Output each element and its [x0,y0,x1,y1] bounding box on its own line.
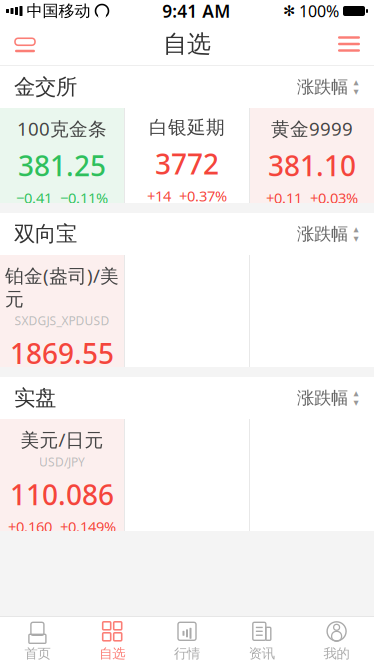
staticText: ✻ [283,3,295,19]
staticText: 涨跌幅 [297,387,348,409]
staticText: ▼ [353,235,358,243]
staticText: 100克金条 [17,116,107,141]
staticText: 实盘 [14,385,56,411]
staticText: 100% [299,0,339,22]
button[interactable]: 涨跌幅 [297,381,360,415]
staticText: ▼ [353,399,358,407]
button[interactable]: 资讯 [224,616,299,666]
staticText: 行情 [174,645,200,662]
staticText: SXDGJS_XPDUSD [14,313,109,329]
button[interactable]: 我的 [299,616,374,666]
staticText: USD/JPY [39,454,85,470]
staticText: 资讯 [249,645,275,662]
staticText: +0.11 [266,188,302,207]
staticText: ▲ [353,78,358,86]
staticText: 我的 [324,645,350,662]
staticText: 铂金(盎司)/美元 [5,263,119,311]
button[interactable]: 菜单 [324,22,374,66]
staticText: 双向宝 [14,221,77,247]
button[interactable]: 白银延期 [125,108,249,203]
staticText: 9:41 AM [162,0,230,22]
staticText: 涨跌幅 [297,76,348,98]
staticText: 381.10 [268,147,356,184]
staticText: +0.37% [179,186,227,206]
staticText: +14 [147,186,171,206]
staticText: 美元/日元 [20,427,103,452]
button[interactable]: 涨跌幅 [297,70,360,104]
staticText: 自选 [163,29,211,59]
staticText: 金交所 [14,74,77,100]
staticText: ▲ [353,389,358,397]
staticText: +0.03% [310,188,358,207]
button[interactable]: 编辑 [0,22,50,66]
staticText: 1869.55 [10,335,114,372]
staticText: 中国移动 [26,1,90,21]
staticText: ▲ [353,225,358,233]
staticText: 110.086 [10,476,114,513]
staticText: 白银延期 [149,116,225,139]
staticText: +0.149% [60,517,116,536]
staticText: 涨跌幅 [297,223,348,245]
button[interactable]: 黄金9999 [250,108,374,203]
staticText: 381.25 [18,147,106,184]
staticText: ▼ [353,88,358,96]
button[interactable]: 行情 [150,616,224,666]
staticText: 首页 [24,645,50,662]
button[interactable]: 涨跌幅 [297,217,360,251]
button[interactable]: 铂金(盎司)/美元 [0,255,124,367]
button[interactable]: 首页 [0,616,75,666]
staticText: 黄金9999 [271,116,353,141]
staticText: −0.41 [16,188,52,207]
button[interactable]: 自选 [75,616,150,666]
button[interactable]: 美元/日元 [0,419,124,531]
staticText: 3772 [155,145,219,182]
staticText: −0.11% [60,188,108,207]
button[interactable]: 100克金条 [0,108,124,203]
staticText: +21.59 [8,376,52,395]
staticText: 自选 [99,645,125,662]
staticText: +0.160 [8,517,52,536]
